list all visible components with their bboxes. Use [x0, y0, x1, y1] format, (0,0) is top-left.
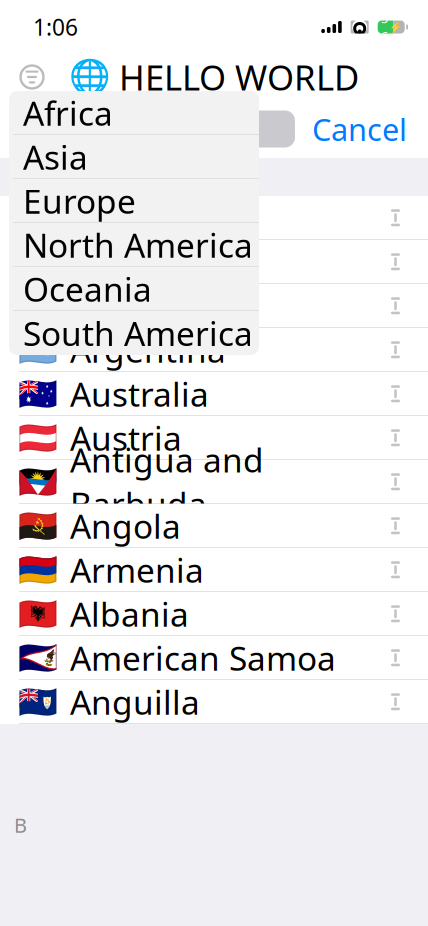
staticText: 1:06 [33, 12, 78, 42]
button[interactable]: Asia [9, 135, 259, 179]
staticText: 56 [381, 9, 389, 45]
button[interactable]: Oceania [9, 267, 259, 311]
staticText: South America [23, 311, 253, 355]
staticText: Cancel [312, 109, 407, 149]
button[interactable]: 🇦🇹 [0, 416, 428, 460]
staticText: B [14, 812, 27, 838]
staticText: 🇦🇴 [18, 507, 58, 544]
button[interactable]: 🇦🇱 [0, 592, 428, 636]
button[interactable]: Filter [9, 55, 55, 99]
staticText: North America [23, 223, 253, 267]
staticText: HELLO WORLD [119, 54, 359, 100]
button[interactable]: 🇦🇿 [0, 196, 428, 240]
staticText: Australia [70, 372, 209, 416]
button[interactable]: South America [9, 311, 259, 355]
button[interactable]: 🇦🇲 [0, 548, 428, 592]
staticText: 🌐 [69, 58, 111, 96]
staticText: Europe [23, 179, 136, 223]
button[interactable]: Europe [9, 179, 259, 223]
staticText: 🇦🇬 [18, 463, 58, 500]
button[interactable]: North America [9, 223, 259, 267]
button[interactable]: 🇦🇷 [0, 328, 428, 372]
staticText: Oceania [23, 267, 152, 311]
button[interactable]: 🇦🇴 [0, 504, 428, 548]
staticText: Angola [70, 504, 181, 548]
staticText: Argentina [70, 328, 226, 372]
staticText: 🇦🇺 [18, 375, 58, 412]
staticText: Antarctica [70, 284, 228, 328]
button[interactable]: 🇦🇬 [0, 460, 428, 504]
button[interactable]: Search [16, 110, 295, 147]
staticText: American Samoa [70, 636, 336, 680]
staticText: 🇦🇹 [18, 419, 58, 456]
staticText: Anguilla [70, 680, 200, 724]
staticText: 🇦🇸 [18, 639, 58, 676]
staticText: A [14, 164, 27, 190]
staticText: 🇦🇿 [18, 199, 58, 236]
staticText: ⚡️ [389, 21, 402, 33]
button[interactable]: 🇦🇮 [0, 680, 428, 724]
staticText: 🇦🇷 [18, 331, 58, 368]
staticText: 🇦🇮 [18, 683, 58, 720]
staticText: Algeria [70, 240, 182, 284]
staticText: Asia [23, 135, 88, 179]
button[interactable]: Cancel [295, 110, 416, 147]
staticText: Antigua and Barbuda [70, 437, 264, 526]
staticText: 🇦🇶 [18, 287, 58, 324]
staticText: 🇦🇲 [18, 551, 58, 588]
staticText: Azerbaijan [70, 196, 238, 240]
button[interactable]: 🇩🇿 [0, 240, 428, 284]
staticText: Albania [70, 592, 189, 636]
staticText: Austria [70, 416, 182, 460]
staticText: 🇦🇱 [18, 595, 58, 632]
button[interactable]: 🇦🇶 [0, 284, 428, 328]
button[interactable]: 🇦🇺 [0, 372, 428, 416]
staticText: Africa [23, 91, 113, 135]
staticText: 🇩🇿 [18, 243, 58, 280]
staticText: Armenia [70, 548, 204, 592]
button[interactable]: Africa [9, 91, 259, 135]
button[interactable]: 🇦🇸 [0, 636, 428, 680]
